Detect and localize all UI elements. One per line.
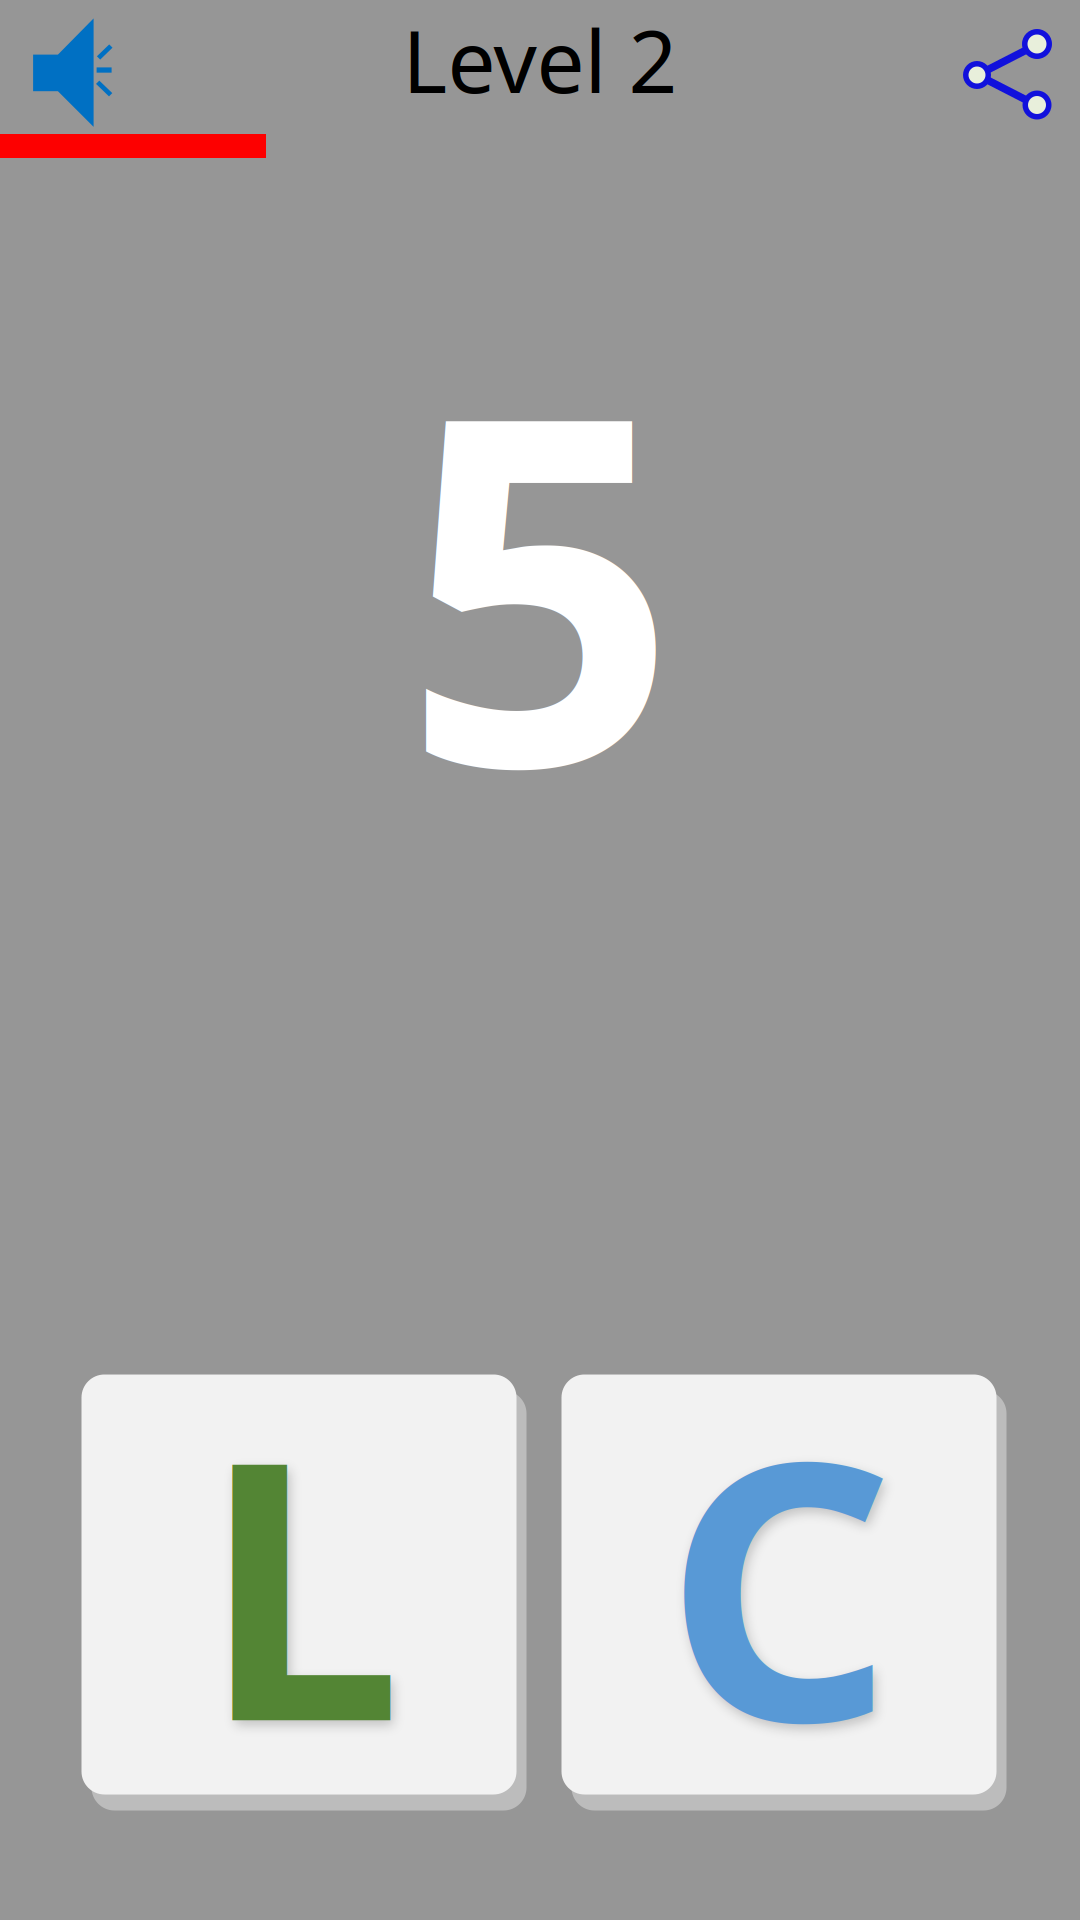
staticText: L <box>202 1344 402 1819</box>
staticText: Level 2 <box>402 3 677 117</box>
staticText: C <box>664 1344 893 1819</box>
button[interactable]: L <box>76 1367 521 1802</box>
button[interactable]: Share <box>957 25 1057 125</box>
staticText: 5 <box>402 259 677 898</box>
button[interactable]: Sound <box>25 14 145 134</box>
button[interactable]: C <box>556 1367 1001 1802</box>
